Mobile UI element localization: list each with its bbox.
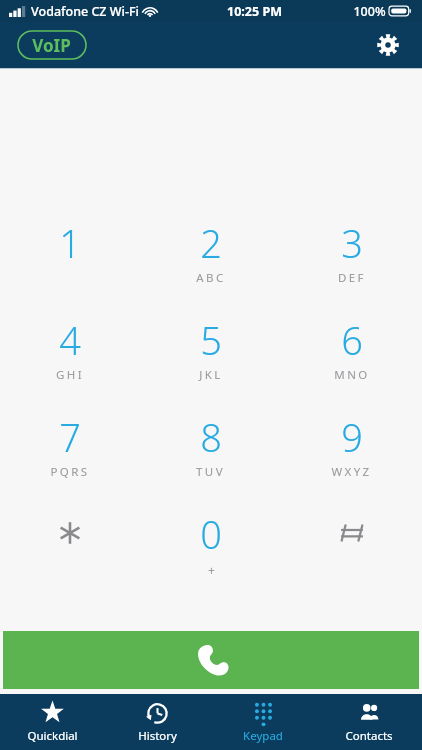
staticText: ABC (196, 270, 226, 286)
button[interactable]: 0 (140, 508, 281, 605)
staticText: 7 (59, 411, 81, 463)
staticText: 6 (341, 314, 363, 366)
staticText: TUV (196, 464, 225, 480)
button[interactable]: 4 (0, 314, 140, 411)
button[interactable]: History (105, 694, 210, 750)
staticText: 10:25 PM (227, 3, 282, 20)
button[interactable] (0, 508, 140, 605)
staticText: 100% (353, 3, 386, 20)
button[interactable]: Quickdial (0, 694, 105, 750)
staticText: WXYZ (331, 464, 372, 480)
staticText: 8 (200, 411, 222, 463)
button[interactable]: 6 (281, 314, 422, 411)
staticText: History (138, 728, 177, 744)
button[interactable]: Call (3, 631, 419, 689)
staticText: 0 (200, 508, 222, 560)
button[interactable]: 9 (281, 411, 422, 508)
button[interactable]: Contacts (316, 694, 422, 750)
staticText: 1 (59, 217, 81, 269)
button[interactable]: Settings (368, 25, 408, 65)
staticText: VoIP (32, 34, 71, 57)
staticText: 9 (341, 411, 363, 463)
staticText: Quickdial (27, 728, 78, 744)
staticText: + (208, 562, 215, 578)
button[interactable]: 5 (140, 314, 281, 411)
staticText: Vodafone CZ Wi-Fi (31, 3, 139, 20)
button[interactable]: Keypad (210, 694, 316, 750)
button[interactable]: 1 (0, 217, 140, 314)
staticText: PQRS (50, 464, 90, 480)
staticText: Keypad (243, 728, 283, 744)
button[interactable]: 2 (140, 217, 281, 314)
button[interactable]: 7 (0, 411, 140, 508)
button[interactable]: VoIP (18, 30, 85, 61)
staticText: 4 (59, 314, 81, 366)
staticText: MNO (334, 367, 370, 383)
staticText: GHI (56, 367, 84, 383)
staticText: 5 (200, 314, 222, 366)
button[interactable]: 8 (140, 411, 281, 508)
staticText: DEF (338, 270, 366, 286)
button[interactable]: 3 (281, 217, 422, 314)
staticText: 2 (200, 217, 222, 269)
staticText: JKL (199, 367, 223, 383)
button[interactable] (281, 508, 422, 605)
staticText: 3 (341, 217, 363, 269)
staticText: Contacts (345, 728, 393, 744)
